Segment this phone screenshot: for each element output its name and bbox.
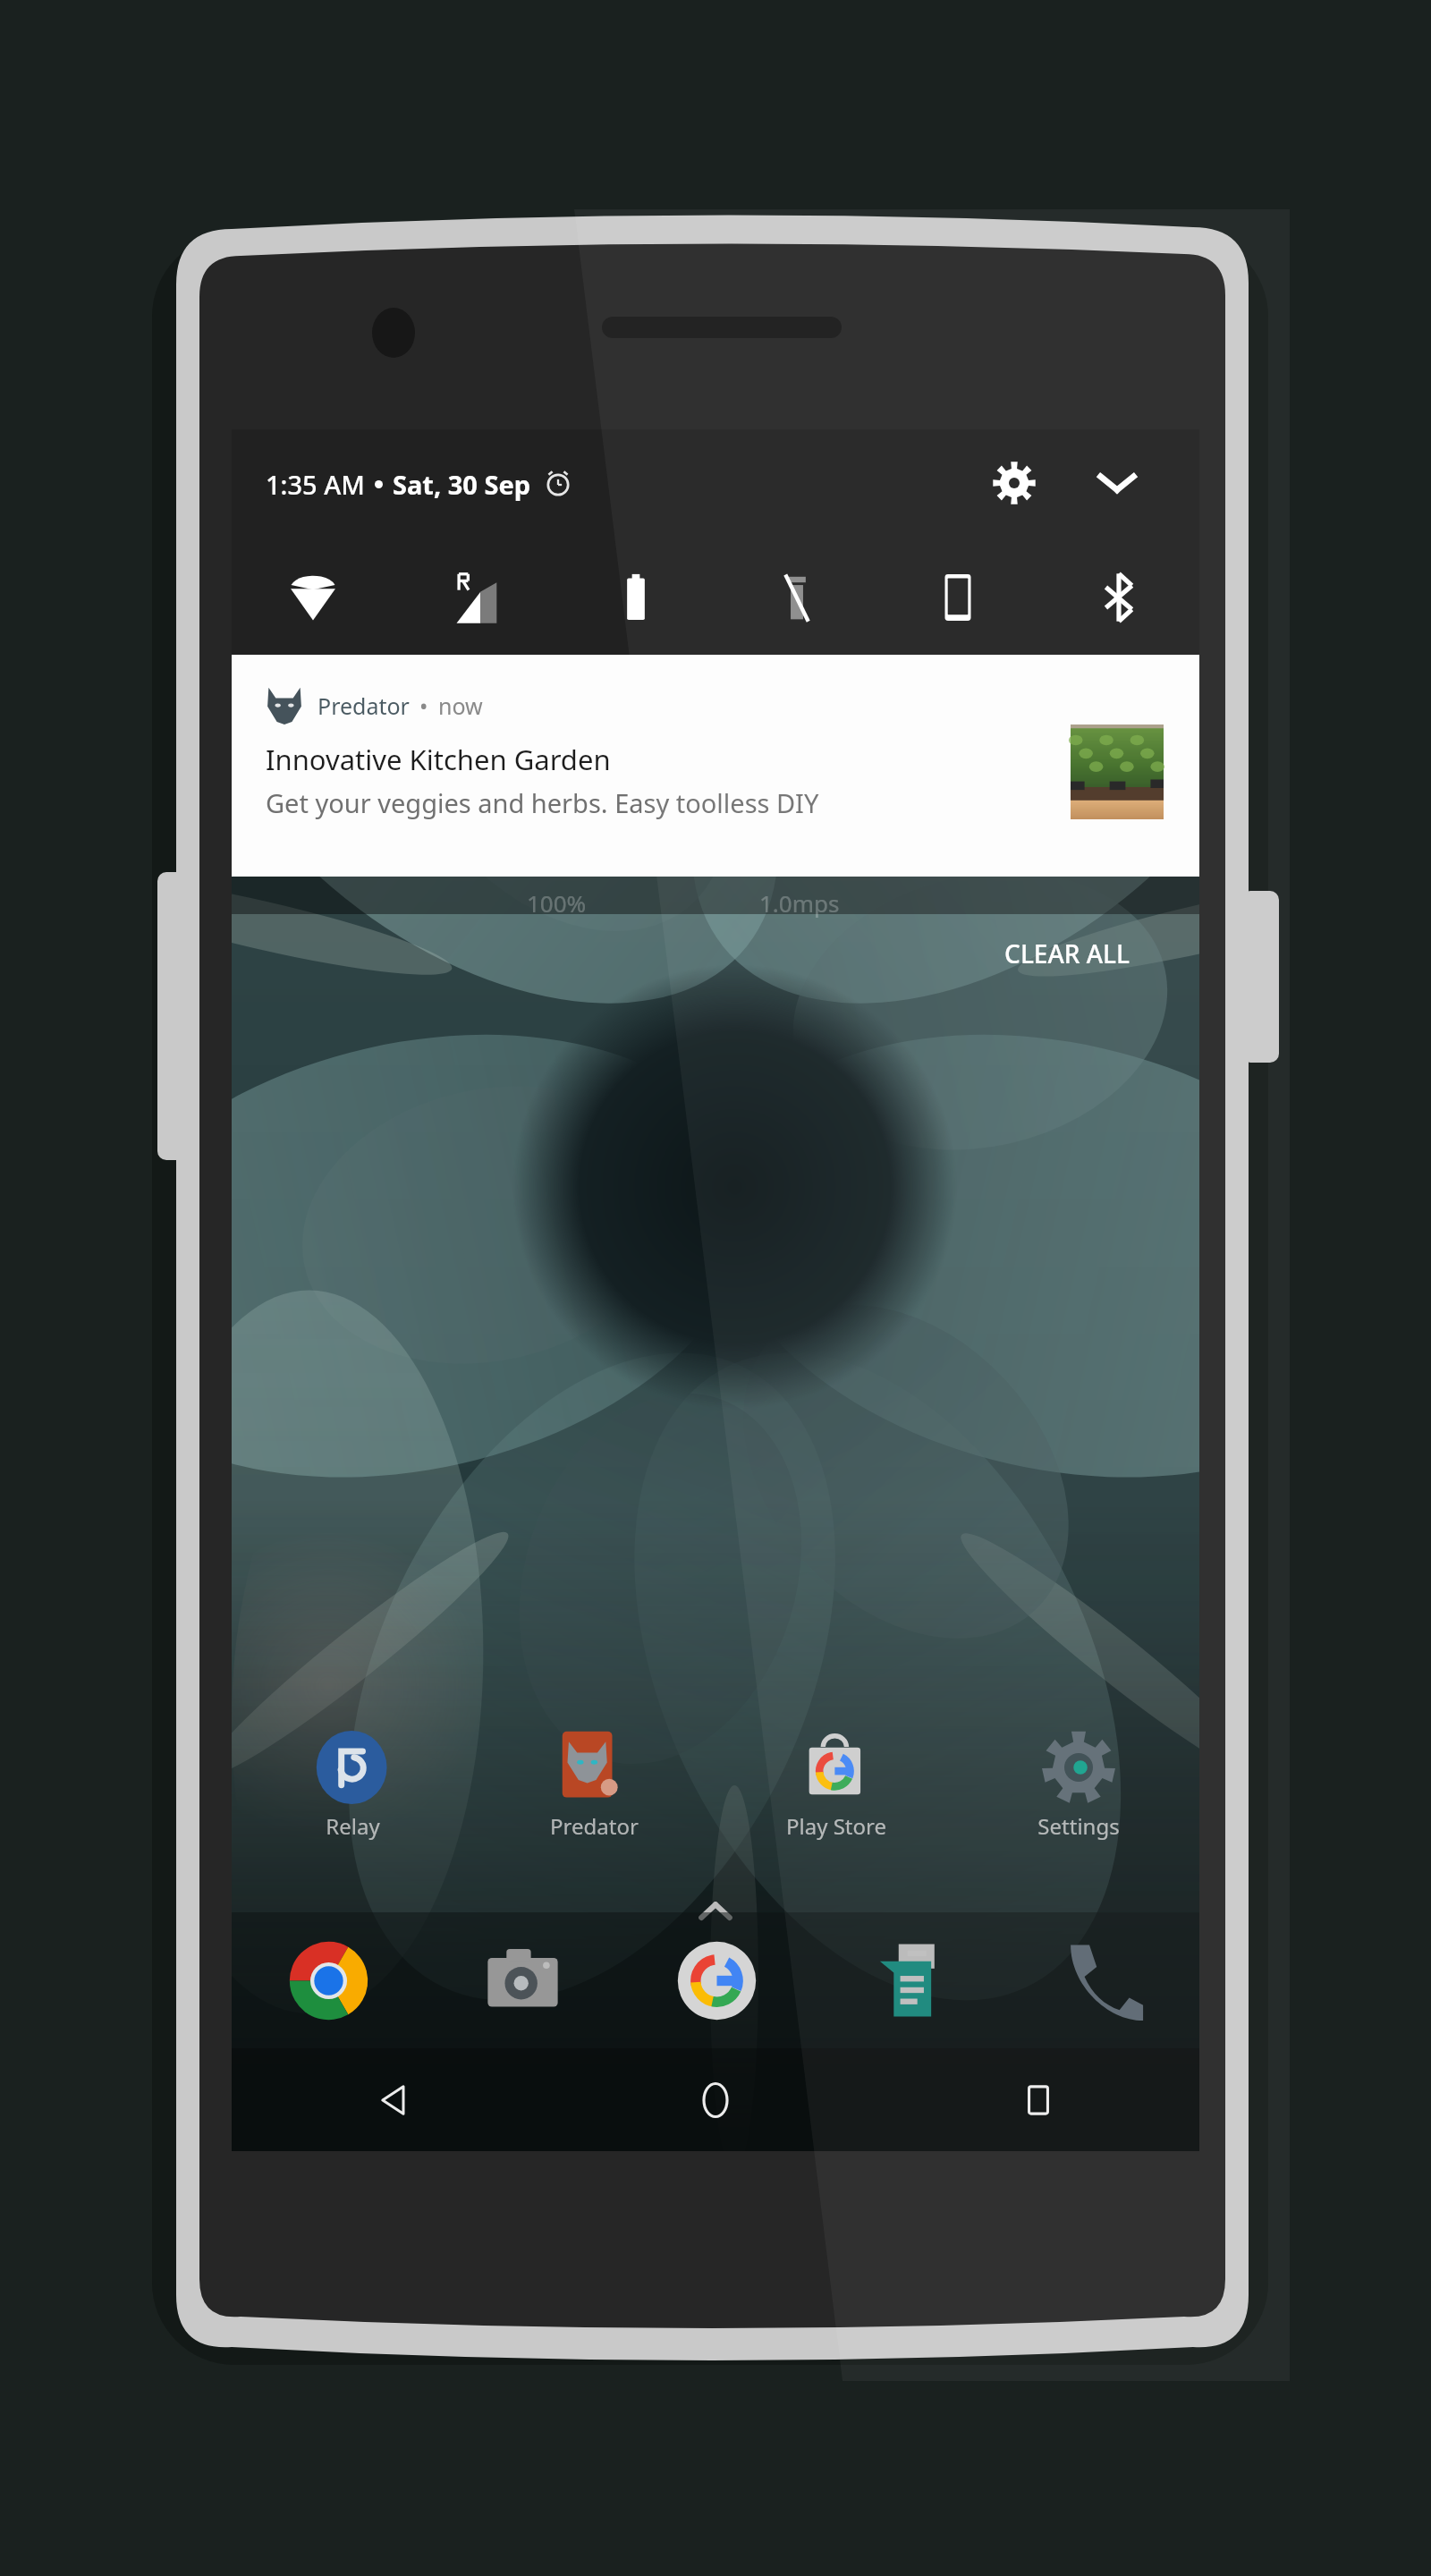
button[interactable]: Recents bbox=[876, 2048, 1199, 2151]
button[interactable]: Back bbox=[232, 2048, 554, 2151]
button[interactable]: Home bbox=[554, 2048, 876, 2151]
staticText: Innovative Kitchen Garden bbox=[266, 741, 611, 778]
button[interactable]: Phone bbox=[1006, 1912, 1199, 2048]
button[interactable]: Play Store bbox=[715, 1731, 957, 1841]
button[interactable]: Chrome bbox=[232, 1912, 426, 2048]
staticText: Relay bbox=[326, 1811, 380, 1841]
staticText: CLEAR ALL bbox=[1004, 936, 1130, 970]
staticText: Predator bbox=[550, 1811, 639, 1841]
button[interactable]: Google bbox=[620, 1912, 813, 2048]
staticText: Settings bbox=[1037, 1811, 1120, 1841]
staticText: Play Store bbox=[786, 1811, 886, 1841]
staticText: 1.0mps bbox=[759, 887, 840, 919]
staticText: Sat, 30 Sep bbox=[393, 467, 531, 502]
button[interactable]: Auto rotate bbox=[877, 555, 1038, 640]
button[interactable]: Messages bbox=[813, 1912, 1006, 2048]
button[interactable]: Predator bbox=[473, 1731, 715, 1841]
button[interactable]: Wi-Fi bbox=[232, 555, 394, 640]
button[interactable]: Mobile signal bbox=[394, 555, 555, 640]
staticText: Predator bbox=[318, 691, 410, 721]
button[interactable]: Expand quick settings bbox=[1072, 438, 1162, 528]
staticText: now bbox=[438, 691, 483, 721]
button[interactable]: All apps bbox=[683, 1878, 748, 1943]
button[interactable]: Predator bbox=[232, 655, 1199, 877]
staticText: • bbox=[419, 691, 428, 721]
button[interactable]: Bluetooth bbox=[1038, 555, 1199, 640]
button[interactable]: Flashlight bbox=[716, 555, 877, 640]
button[interactable]: Camera bbox=[426, 1912, 620, 2048]
button[interactable]: CLEAR ALL bbox=[822, 919, 1164, 987]
button[interactable]: Settings bbox=[970, 438, 1059, 528]
button[interactable]: Relay bbox=[232, 1731, 473, 1841]
staticText: 1:35 AM bbox=[266, 467, 365, 502]
staticText: 100% bbox=[527, 887, 587, 919]
button[interactable]: Settings bbox=[957, 1731, 1199, 1841]
button[interactable]: Battery bbox=[555, 555, 716, 640]
staticText: Get your veggies and herbs. Easy toolles… bbox=[266, 785, 819, 820]
